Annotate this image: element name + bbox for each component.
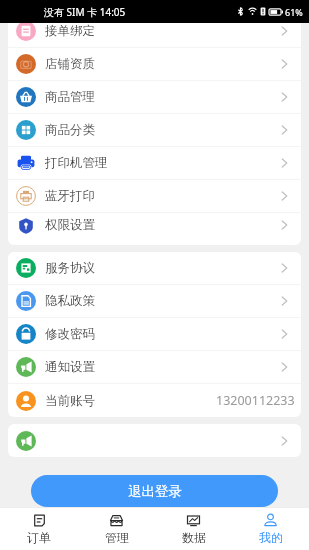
button[interactable]: 服务协议	[8, 252, 301, 284]
staticText: 修改密码	[45, 326, 95, 342]
staticText: 通知设置	[45, 359, 95, 375]
staticText: 13200112233	[216, 392, 295, 409]
button[interactable]: 退出登录	[31, 475, 278, 507]
staticText: 没有 SIM 卡 14:05	[44, 5, 126, 19]
staticText: 蓝牙打印	[45, 188, 95, 204]
button[interactable]: 店铺资质	[8, 48, 301, 80]
button[interactable]: 通知设置	[8, 351, 301, 383]
button[interactable]: 订单	[0, 508, 78, 550]
button[interactable]: 管理	[78, 508, 155, 550]
staticText: 管理	[105, 530, 129, 545]
button[interactable]: 权限设置	[8, 213, 301, 237]
staticText: 数据	[182, 530, 206, 545]
staticText: 店铺资质	[45, 56, 95, 72]
staticText: 权限设置	[45, 217, 95, 233]
button[interactable]: 我的	[232, 508, 309, 550]
staticText: 打印机管理	[45, 155, 108, 171]
staticText: 商品管理	[45, 89, 95, 105]
staticText: 61%	[285, 6, 303, 18]
button[interactable]: 商品管理	[8, 81, 301, 113]
button[interactable]: 修改密码	[8, 318, 301, 350]
button[interactable]: 蓝牙打印	[8, 180, 301, 212]
staticText: 商品分类	[45, 122, 95, 138]
staticText: 接单绑定	[45, 23, 95, 39]
staticText: 当前账号	[45, 393, 95, 409]
staticText: 我的	[259, 530, 283, 545]
staticText: 退出登录	[128, 483, 182, 500]
button[interactable]: 隐私政策	[8, 285, 301, 317]
button[interactable]	[8, 424, 301, 457]
button[interactable]: 商品分类	[8, 114, 301, 146]
button[interactable]: 接单绑定	[8, 23, 301, 47]
staticText: 服务协议	[45, 260, 95, 276]
staticText: 订单	[27, 530, 51, 545]
staticText: 隐私政策	[45, 293, 95, 309]
button[interactable]: 数据	[155, 508, 232, 550]
button[interactable]: 打印机管理	[8, 147, 301, 179]
button[interactable]: 当前账号	[8, 384, 301, 417]
